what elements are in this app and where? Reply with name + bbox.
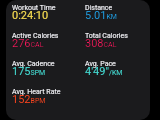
staticText: 4'49"/KM — [85, 65, 123, 78]
staticText: 308CAL — [85, 37, 117, 50]
staticText: 0:24:10 — [12, 9, 49, 22]
staticText: 276CAL — [12, 37, 44, 50]
button[interactable]: Active Calories — [12, 32, 59, 45]
button[interactable]: Avg. Pace — [85, 60, 123, 73]
button[interactable]: Avg. Cadence — [12, 60, 55, 73]
staticText: Distance — [85, 4, 113, 12]
staticText: Active Calories — [12, 32, 59, 40]
staticText: 152BPM — [12, 93, 46, 106]
button[interactable]: Avg. Heart Rate — [12, 88, 61, 101]
staticText: Avg. Cadence — [12, 60, 55, 68]
staticText: Avg. Heart Rate — [12, 88, 61, 96]
staticText: Avg. Pace — [85, 60, 116, 68]
staticText: 175SPM — [12, 65, 46, 78]
staticText: 5.01KM — [85, 9, 117, 22]
staticText: Workout Time — [12, 4, 56, 12]
button[interactable]: Workout Time — [12, 4, 56, 17]
button[interactable]: Distance — [85, 4, 117, 17]
button[interactable]: Total Calories — [85, 32, 128, 45]
staticText: Total Calories — [85, 32, 128, 40]
